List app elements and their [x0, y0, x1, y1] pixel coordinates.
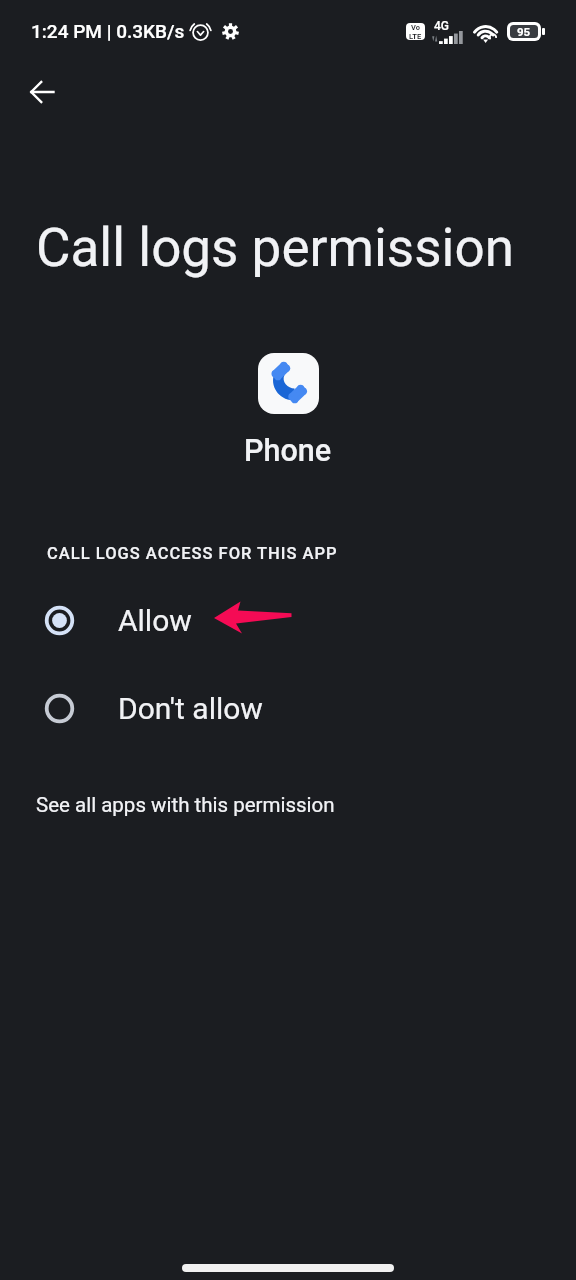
- staticText: 4G: [434, 19, 449, 33]
- staticText: CALL LOGS ACCESS FOR THIS APP: [47, 544, 338, 563]
- button[interactable]: Back: [14, 64, 70, 120]
- staticText: Call logs permission: [36, 217, 514, 279]
- staticText: See all apps with this permission: [36, 793, 335, 817]
- button[interactable]: Don't allow: [0, 664, 576, 752]
- staticText: LTE: [409, 32, 422, 40]
- staticText: Phone: [244, 433, 332, 469]
- staticText: Don't allow: [118, 691, 263, 726]
- staticText: Allow: [118, 603, 192, 638]
- button[interactable]: See all apps with this permission: [0, 783, 576, 827]
- button[interactable]: Allow: [0, 576, 576, 664]
- staticText: 1:24 PM | 0.3KB/s: [31, 20, 185, 42]
- staticText: Vo: [411, 23, 420, 32]
- staticText: 95: [517, 25, 531, 38]
